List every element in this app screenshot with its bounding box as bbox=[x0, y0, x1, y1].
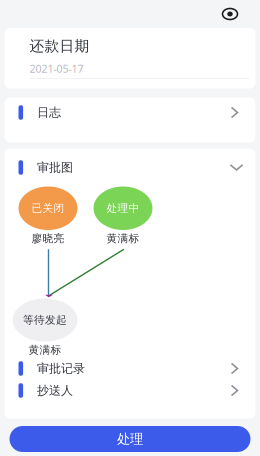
staticText: 等待发起 bbox=[23, 313, 67, 326]
staticText: 已关闭 bbox=[31, 202, 64, 215]
staticText: 审批图 bbox=[37, 160, 73, 175]
staticText: 黄满标 bbox=[106, 232, 139, 245]
staticText: 处理 bbox=[117, 431, 143, 447]
button[interactable]: More bbox=[219, 6, 241, 22]
staticText: 2021-05-17 bbox=[29, 61, 83, 76]
staticText: 审批记录 bbox=[37, 361, 85, 376]
staticText: 处理中 bbox=[106, 202, 139, 215]
button[interactable]: 处理 bbox=[9, 426, 250, 452]
button[interactable]: Collapse bbox=[226, 157, 246, 177]
staticText: 日志 bbox=[37, 105, 61, 120]
button[interactable]: 审批记录 bbox=[4, 357, 255, 379]
button[interactable]: 日志 bbox=[4, 97, 255, 127]
staticText: 廖晓亮 bbox=[31, 232, 64, 245]
staticText: 还款日期 bbox=[29, 37, 89, 55]
staticText: 抄送人 bbox=[37, 383, 73, 398]
staticText: 黄满标 bbox=[28, 343, 61, 356]
button[interactable]: 抄送人 bbox=[4, 379, 255, 401]
